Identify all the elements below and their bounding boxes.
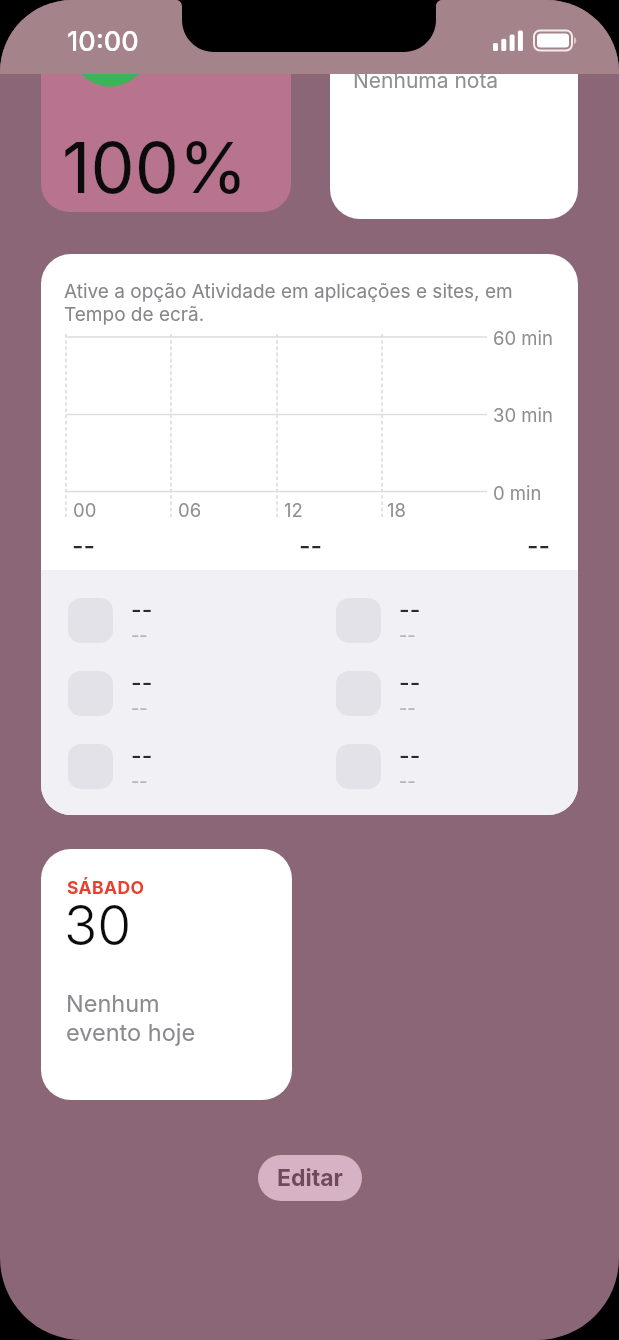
staticText: -- — [527, 531, 551, 561]
staticText: -- — [399, 771, 416, 793]
staticText: -- — [399, 596, 421, 624]
staticText: -- — [131, 698, 148, 720]
staticText: -- — [131, 625, 148, 647]
staticText: -- — [399, 625, 416, 647]
staticText: -- — [72, 531, 96, 561]
staticText: Ative a opção Atividade em aplicações e … — [64, 280, 530, 326]
staticText: -- — [299, 531, 323, 561]
staticText: Nenhum evento hoje — [66, 989, 196, 1047]
staticText: -- — [399, 742, 421, 770]
staticText: 60 min — [493, 327, 553, 349]
staticText: -- — [131, 771, 148, 793]
staticText: 10:00 — [67, 25, 139, 58]
staticText: 30 min — [493, 404, 553, 426]
staticText: -- — [399, 669, 421, 697]
staticText: 30 — [64, 892, 132, 959]
staticText: 100% — [62, 125, 248, 210]
staticText: 06 — [178, 499, 202, 521]
button[interactable]: 100% — [41, 74, 291, 212]
staticText: -- — [131, 742, 153, 770]
staticText: -- — [131, 596, 153, 624]
staticText: Nenhuma nota — [353, 74, 499, 93]
button[interactable]: Nenhuma nota — [330, 74, 578, 219]
staticText: 12 — [284, 499, 303, 521]
staticText: 00 — [73, 499, 97, 521]
other: Signal and battery status — [493, 30, 583, 54]
staticText: 0 min — [493, 482, 542, 504]
staticText: -- — [131, 669, 153, 697]
staticText: SÁBADO — [67, 877, 145, 898]
staticText: Editar — [277, 1164, 343, 1192]
button[interactable]: SÁBADO — [41, 849, 292, 1100]
staticText: 18 — [387, 499, 406, 521]
button[interactable]: Ative a opção Atividade em aplicações e … — [41, 254, 578, 815]
button[interactable]: Editar — [258, 1155, 362, 1201]
staticText: -- — [399, 698, 416, 720]
